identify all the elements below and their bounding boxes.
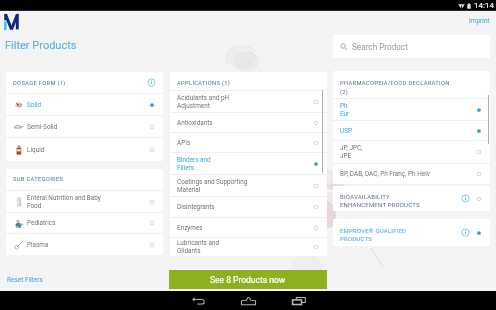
staticText: Search Product: [352, 42, 408, 52]
staticText: Filter Products: [5, 39, 77, 52]
button[interactable]: Imprint: [469, 17, 490, 25]
staticText: Binders and Fillers: [177, 156, 312, 172]
staticText: Lubricants and Glidants: [177, 239, 312, 255]
button[interactable]: Reset Filters: [7, 276, 43, 284]
staticText: EMPROVE® QUALIFIED PRODUCTS: [340, 227, 461, 242]
staticText: Acidulants and pH Adjustment: [177, 94, 312, 110]
button[interactable]: Disintegrants: [177, 197, 320, 217]
button[interactable]: Enteral Nutrition and Baby Food: [13, 191, 156, 212]
staticText: Enteral Nutrition and Baby Food: [27, 194, 148, 210]
staticText: Plasma: [27, 241, 148, 249]
staticText: Solid: [27, 101, 148, 109]
button[interactable]: Antioxidants: [177, 113, 320, 132]
button[interactable]: Pediatrics: [13, 213, 156, 233]
button[interactable]: Recents: [285, 293, 312, 308]
staticText: PHARMACOPEIA/FOOD DECLARATION (2): [340, 80, 450, 96]
staticText: BIOAVAILABILITY ENHANCEMENT PRODUCTS: [340, 193, 461, 208]
button[interactable]: Enzymes: [177, 218, 320, 237]
staticText: Semi-Solid: [27, 123, 148, 131]
staticText: Coatings and Supporting Material: [177, 178, 312, 194]
button[interactable]: Liquid: [13, 138, 156, 161]
button[interactable]: Coatings and Supporting Material: [177, 175, 320, 196]
button[interactable]: APIs: [177, 133, 320, 152]
staticText: DOSAGE FORM (1): [13, 80, 66, 87]
button[interactable]: Info: [461, 194, 470, 203]
button[interactable]: BP, DAB, DAC, Ph Franç, Ph Helv: [340, 164, 483, 184]
button[interactable]: Info: [147, 78, 156, 87]
staticText: SUB CATEGORIES: [13, 176, 64, 183]
staticText: Liquid: [27, 146, 148, 154]
staticText: Ph Eur: [340, 102, 475, 118]
button[interactable]: EMPROVE® QUALIFIED PRODUCTS: [340, 219, 483, 246]
button[interactable]: Binders and Fillers: [177, 153, 320, 174]
staticText: 14:14: [474, 1, 494, 10]
button[interactable]: BIOAVAILABILITY ENHANCEMENT PRODUCTS: [340, 186, 483, 211]
staticText: Pediatrics: [27, 219, 148, 227]
button[interactable]: Home: [234, 293, 262, 308]
button[interactable]: Acidulants and pH Adjustment: [177, 91, 320, 112]
staticText: Enzymes: [177, 224, 312, 232]
button[interactable]: Back: [185, 293, 212, 308]
button[interactable]: Search Product: [333, 35, 490, 58]
staticText: Antioxidants: [177, 119, 312, 127]
staticText: BP, DAB, DAC, Ph Franç, Ph Helv: [340, 170, 475, 178]
staticText: Disintegrants: [177, 203, 312, 211]
button[interactable]: JP, JPC, JPE: [340, 141, 483, 163]
button[interactable]: Semi-Solid: [13, 116, 156, 137]
button[interactable]: Lubricants and Glidants: [177, 238, 320, 256]
button[interactable]: Ph Eur: [340, 99, 483, 120]
button[interactable]: Info: [461, 228, 470, 237]
staticText: APPLICATIONS (1): [177, 80, 231, 87]
button[interactable]: USP: [340, 121, 483, 140]
staticText: APIs: [177, 139, 312, 147]
button[interactable]: Plasma: [13, 234, 156, 255]
staticText: USP: [340, 127, 475, 135]
staticText: See 8 Products now: [210, 275, 286, 285]
button[interactable]: Solid: [13, 94, 156, 115]
button[interactable]: See 8 Products now: [169, 270, 327, 289]
staticText: JP, JPC, JPE: [340, 144, 475, 160]
